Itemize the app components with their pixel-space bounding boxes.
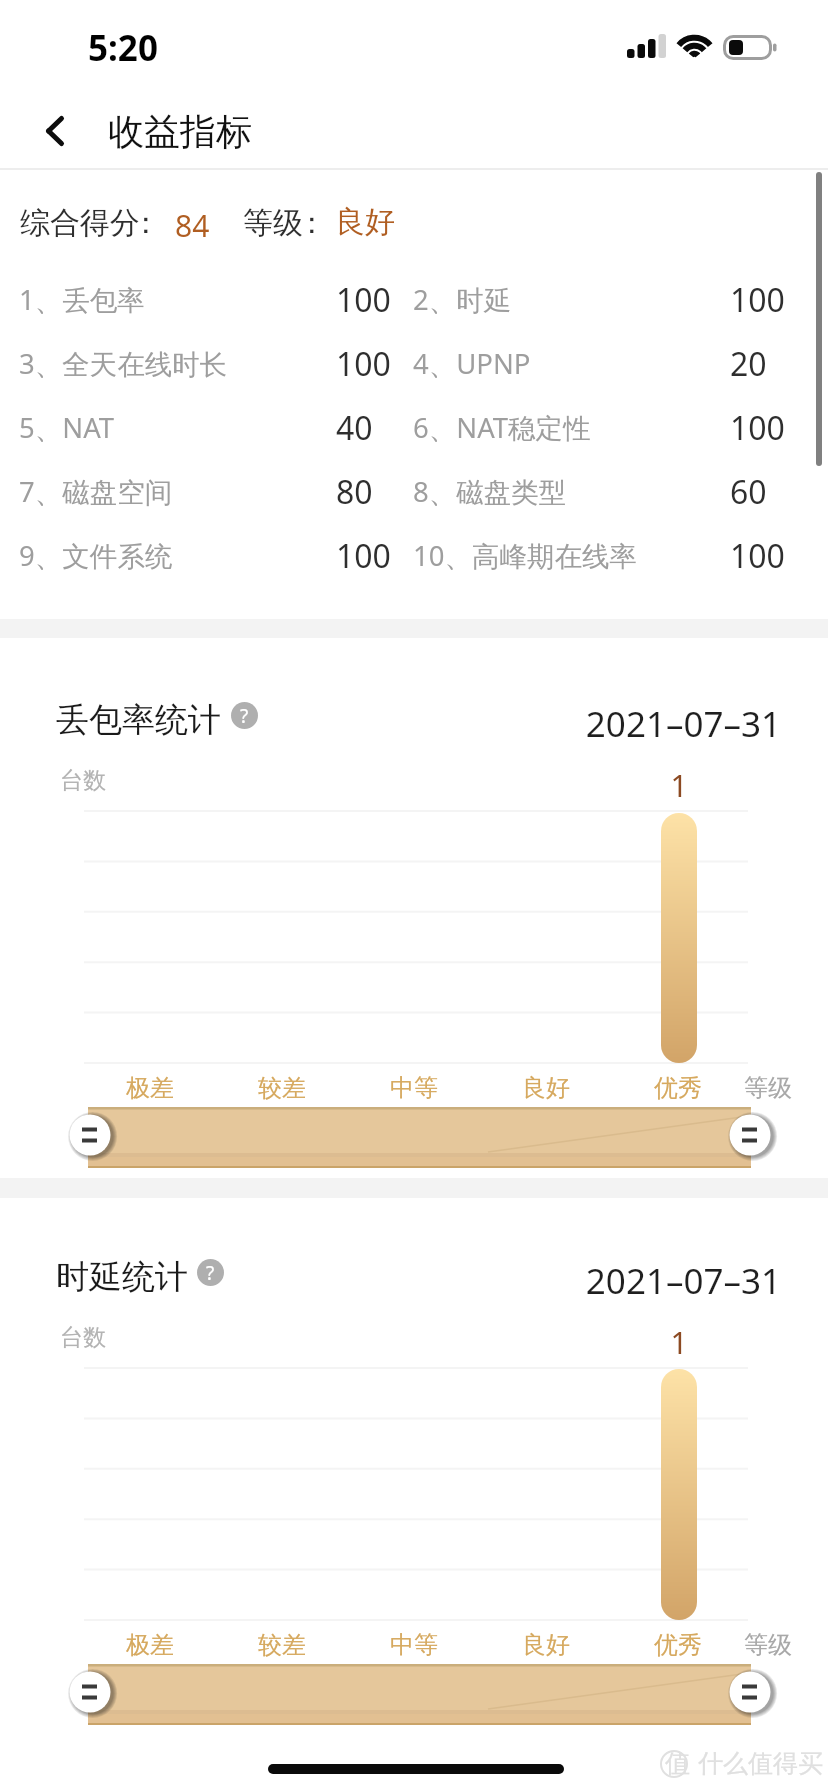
staticText: 9、文件系统 [19,537,173,575]
staticText: 6、NAT稳定性 [413,409,591,447]
staticText: 80 [336,470,373,514]
staticText: 良好 [486,1630,606,1660]
staticText: 100 [336,278,391,322]
staticText: ： [297,204,327,242]
staticText: 60 [730,470,767,514]
staticText: 1、丢包率 [19,281,145,319]
button[interactable]: Back [0,92,108,170]
staticText: 5:20 [88,24,158,72]
staticText: 2、时延 [413,281,512,319]
staticText: 100 [336,342,391,386]
staticText: 中等 [354,1630,474,1660]
staticText: 2021–07–31 [560,1257,781,1305]
staticText: 时延统计 [56,1256,188,1298]
button[interactable]: Help [231,702,258,729]
staticText: 极差 [90,1073,210,1103]
staticText: 中等 [354,1073,474,1103]
staticText: 等级 [243,204,303,242]
staticText: 值 [665,1748,690,1779]
staticText: 综合得分 [20,204,140,242]
staticText: 1 [639,1322,719,1363]
staticText: 较差 [222,1073,342,1103]
staticText: ： [131,204,161,242]
staticText: 2021–07–31 [560,700,781,748]
staticText: ? [206,1260,215,1286]
staticText: 优秀 [618,1630,738,1660]
staticText: 良好 [335,203,395,241]
staticText: 7、磁盘空间 [19,473,173,511]
staticText: 等级 [708,1630,828,1660]
staticText: 8、磁盘类型 [413,473,567,511]
staticText: 台数 [60,766,106,795]
staticText: 等级 [708,1073,828,1103]
staticText: 4、UPNP [413,345,531,383]
button[interactable]: Help [197,1259,224,1286]
staticText: 收益指标 [108,109,252,154]
staticText: 10、高峰期在线率 [413,537,637,575]
staticText: 1 [639,765,719,806]
staticText: 较差 [222,1630,342,1660]
staticText: 丢包率统计 [56,699,221,741]
staticText: 100 [336,534,391,578]
staticText: 5、NAT [19,409,115,447]
staticText: 40 [336,406,373,450]
staticText: 极差 [90,1630,210,1660]
staticText: 什么值得买 [698,1748,823,1779]
staticText: 84 [175,205,210,246]
staticText: 台数 [60,1323,106,1352]
staticText: 100 [730,406,785,450]
staticText: 良好 [486,1073,606,1103]
staticText: 3、全天在线时长 [19,345,228,383]
staticText: 100 [730,534,785,578]
staticText: 100 [730,278,785,322]
staticText: 20 [730,342,767,386]
staticText: 优秀 [618,1073,738,1103]
staticText: ? [240,703,249,729]
